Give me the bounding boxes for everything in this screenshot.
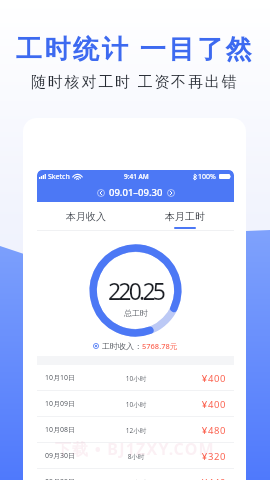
staticText: 10小时 xyxy=(106,400,166,409)
staticText: 09月29日 xyxy=(45,477,106,480)
button[interactable]: 10月09日 xyxy=(37,391,234,417)
button[interactable]: 本月工时 xyxy=(135,202,234,231)
staticText: ¥400 xyxy=(166,372,226,385)
staticText: 下载 • BJ1ZXY.COM xyxy=(55,438,215,460)
staticText: 09月30日 xyxy=(45,451,106,461)
button[interactable]: Previous period xyxy=(97,189,105,197)
staticText: 9:41 AM xyxy=(124,172,149,181)
staticText: ¥320 xyxy=(166,450,226,463)
staticText: 本月工时 xyxy=(165,210,205,223)
button[interactable]: 10月08日 xyxy=(37,417,234,443)
button[interactable]: 本月收入 xyxy=(37,202,135,231)
staticText: 10月08日 xyxy=(45,425,106,435)
staticText: 5768.78元 xyxy=(142,341,178,351)
staticText: 10月10日 xyxy=(45,373,106,383)
button[interactable]: 09月30日 xyxy=(37,443,234,469)
staticText: ¥400 xyxy=(166,398,226,411)
staticText: 工时收入： xyxy=(102,341,142,351)
staticText: ¥440 xyxy=(166,476,226,480)
staticText: 10小时 xyxy=(106,374,166,383)
staticText: 随时核对工时 工资不再出错 xyxy=(31,71,239,91)
staticText: 12小时 xyxy=(106,426,166,435)
staticText: 工时统计 一目了然 xyxy=(16,30,255,66)
button[interactable]: Next period xyxy=(167,189,175,197)
button[interactable]: 10月10日 xyxy=(37,365,234,391)
staticText: 220.25 xyxy=(108,275,164,306)
staticText: Sketch xyxy=(48,172,70,182)
staticText: 总工时 xyxy=(124,308,148,318)
staticText: 09.01–09.30 xyxy=(109,186,163,199)
button[interactable]: 09月29日 xyxy=(37,469,234,480)
staticText: 8小时 xyxy=(106,452,166,461)
staticText: ¥480 xyxy=(166,424,226,437)
staticText: 10月09日 xyxy=(45,399,106,409)
staticText: 100% xyxy=(198,172,216,182)
staticText: 本月收入 xyxy=(66,210,106,223)
